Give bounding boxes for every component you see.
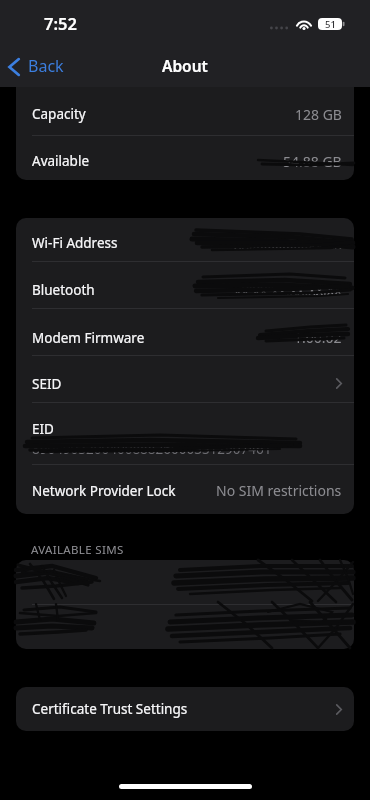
staticText: EID [32,420,54,438]
staticText: 51 [325,18,336,30]
button[interactable]: Network Provider Lock [16,465,354,514]
button[interactable]: Back [4,54,72,80]
staticText: Certificate Trust Settings [32,700,188,718]
button[interactable]: Bluetooth [16,262,354,309]
staticText: 7:52 [44,12,77,34]
staticText: Bluetooth [32,281,95,299]
staticText: About [162,55,208,76]
button[interactable]: EID [16,403,354,465]
staticText: 54.88 GB [283,152,342,171]
staticText: 8904903200400888260003312907461 [32,440,272,458]
button[interactable]: Modem Firmware [16,309,354,356]
staticText: Back [28,55,64,77]
staticText: xx:xx:xx:xx:xx:xx [234,234,342,253]
button[interactable]: Capacity [16,92,354,136]
staticText: 1.00.02 [294,328,342,347]
staticText: SEID [32,375,62,393]
staticText: Network Provider Lock [32,482,176,500]
staticText: AVAILABLE SIMS [31,542,124,558]
staticText: No SIM restrictions [216,481,342,500]
button[interactable]: Wi-Fi Address [16,218,354,262]
button[interactable]: Certificate Trust Settings [16,687,354,731]
staticText: Capacity [32,105,86,123]
staticText: 128 GB [295,105,342,124]
staticText: xx:xx:xx:xx:xx:xx [234,280,342,299]
button[interactable]: SEID [16,356,354,403]
staticText: Modem Firmware [32,329,145,347]
button[interactable]: Available [16,136,354,180]
staticText: Wi-Fi Address [32,234,118,252]
staticText: Available [32,152,89,170]
